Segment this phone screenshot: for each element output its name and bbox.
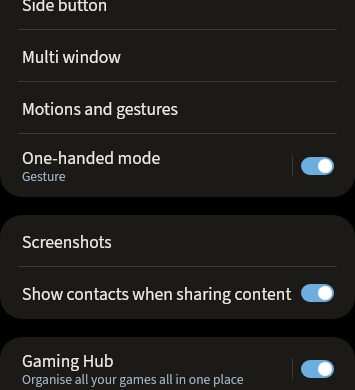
button[interactable]: Toggle (301, 360, 334, 378)
staticText: Show contacts when sharing content (22, 282, 292, 307)
staticText: Gesture (22, 167, 66, 186)
button[interactable]: Side button (0, 0, 355, 29)
button[interactable]: Show contacts when sharing content (0, 267, 355, 318)
staticText: Motions and gestures (22, 97, 178, 122)
staticText: One-handed mode (22, 146, 161, 171)
staticText: Multi window (22, 45, 121, 70)
staticText: Organise all your games all in one place (22, 370, 244, 389)
button[interactable]: Screenshots (0, 215, 355, 266)
button[interactable]: Motions and gestures (0, 82, 355, 133)
staticText: Screenshots (22, 230, 112, 255)
button[interactable]: One-handed mode (0, 134, 355, 197)
button[interactable]: Gaming Hub (0, 337, 355, 390)
button[interactable]: Toggle (301, 284, 334, 302)
staticText: Gaming Hub (22, 349, 114, 374)
button[interactable]: Toggle (301, 157, 334, 175)
button[interactable]: Multi window (0, 30, 355, 81)
staticText: Side button (22, 0, 108, 18)
